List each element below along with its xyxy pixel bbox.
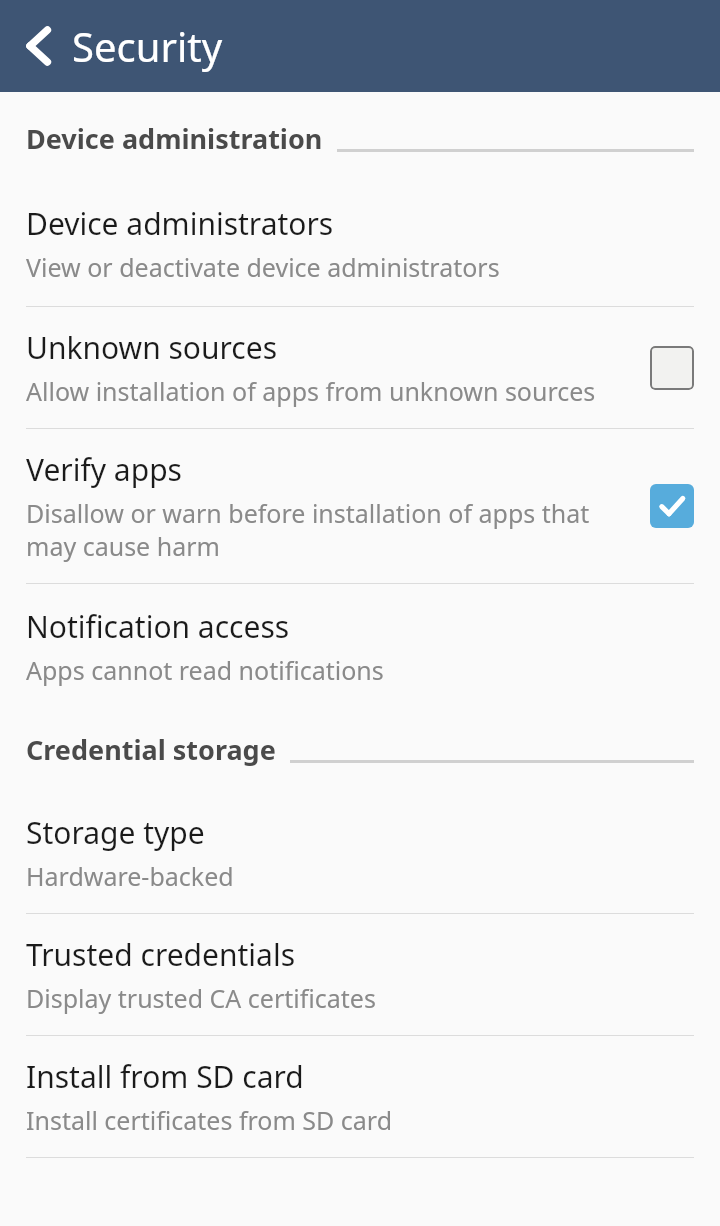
staticText: Display trusted CA certificates [26, 981, 376, 1015]
button[interactable]: Unknown sources [0, 307, 720, 428]
staticText: Credential storage [26, 731, 276, 768]
button[interactable]: Notification access [0, 584, 720, 709]
button[interactable]: Device administrators [0, 157, 720, 306]
staticText: Trusted credentials [26, 934, 296, 975]
staticText: Allow installation of apps from unknown … [26, 374, 596, 408]
staticText: View or deactivate device administrators [26, 250, 500, 284]
staticText: Device administrators [26, 203, 334, 244]
staticText: Apps cannot read notifications [26, 653, 384, 687]
staticText: Security [72, 19, 223, 73]
button[interactable]: Back [0, 0, 720, 92]
button[interactable]: Trusted credentials [0, 914, 720, 1035]
button[interactable]: Install from SD card [0, 1036, 720, 1157]
staticText: Disallow or warn before installation of … [26, 496, 620, 563]
staticText: Install certificates from SD card [26, 1103, 393, 1137]
staticText: Storage type [26, 812, 205, 853]
staticText: Hardware-backed [26, 859, 234, 893]
staticText: Verify apps [26, 449, 182, 490]
staticText: Unknown sources [26, 327, 278, 368]
staticText: Install from SD card [26, 1056, 304, 1097]
staticText: Device administration [26, 120, 323, 157]
button[interactable]: Verify apps [0, 429, 720, 583]
staticText: Notification access [26, 606, 290, 647]
button[interactable]: Storage type [0, 768, 720, 913]
